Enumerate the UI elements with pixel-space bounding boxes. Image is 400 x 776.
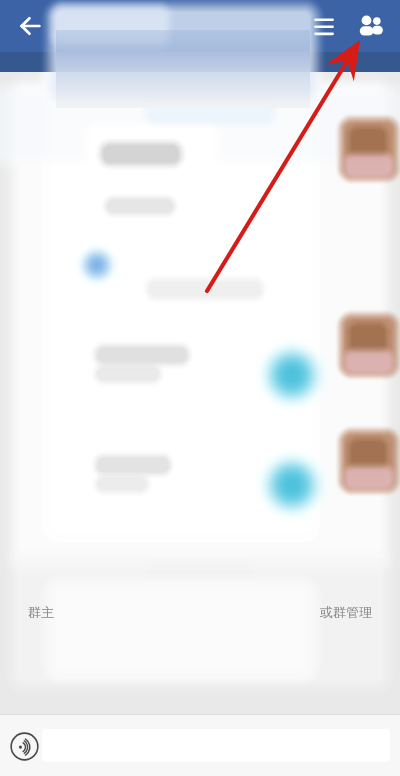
staticText: 或群管理: [320, 604, 372, 620]
button[interactable]: Voice message: [8, 730, 40, 762]
staticText: 群主: [28, 604, 54, 620]
button[interactable]: Menu: [302, 4, 346, 48]
button[interactable]: Back: [8, 4, 52, 48]
button[interactable]: Group members: [348, 4, 392, 48]
